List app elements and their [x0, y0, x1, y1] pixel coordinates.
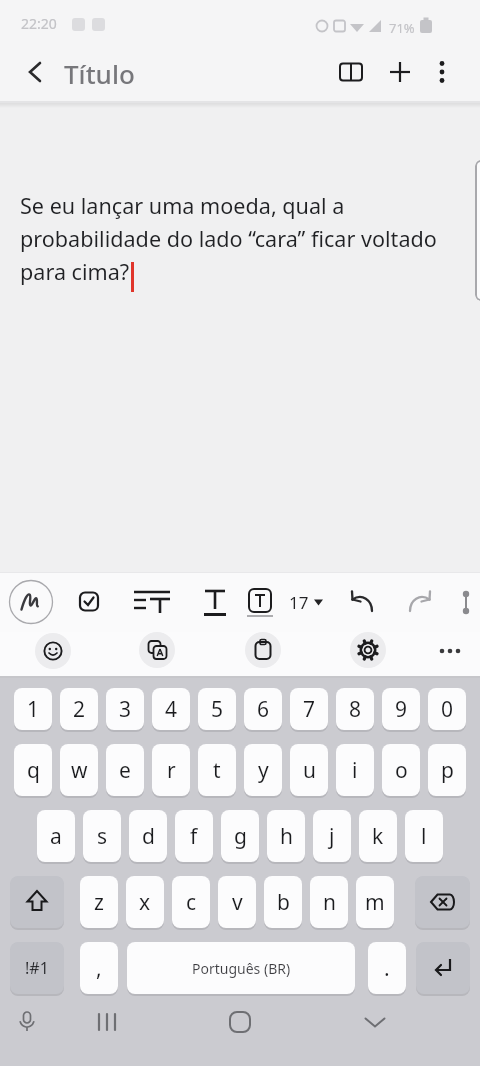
staticText: b — [277, 888, 290, 917]
staticText: c — [186, 888, 197, 917]
button[interactable]: 3 — [106, 688, 144, 730]
button[interactable] — [238, 580, 282, 624]
button[interactable] — [35, 633, 71, 669]
button[interactable] — [87, 1002, 127, 1042]
button[interactable]: t — [198, 744, 236, 796]
staticText: a — [50, 822, 62, 851]
button[interactable]: p — [428, 744, 466, 796]
button[interactable]: a — [37, 810, 75, 862]
button[interactable]: w — [60, 744, 98, 796]
button[interactable] — [139, 632, 175, 668]
button[interactable]: k — [359, 810, 397, 862]
button[interactable] — [416, 942, 470, 994]
staticText: 7 — [303, 695, 316, 724]
staticText: n — [323, 888, 336, 917]
staticText: 2 — [73, 695, 86, 724]
button[interactable]: v — [218, 876, 256, 928]
button[interactable] — [355, 1002, 395, 1042]
button[interactable]: u — [290, 744, 328, 796]
button[interactable]: e — [106, 744, 144, 796]
button[interactable] — [340, 580, 384, 624]
staticText: 6 — [257, 695, 270, 724]
staticText: j — [329, 822, 335, 851]
button[interactable] — [10, 876, 64, 928]
button[interactable]: i — [336, 744, 374, 796]
button[interactable] — [9, 580, 53, 624]
button[interactable]: , — [80, 942, 118, 994]
staticText: 17 — [289, 591, 309, 614]
staticText: 0 — [441, 695, 454, 724]
button[interactable]: h — [267, 810, 305, 862]
button[interactable]: 17 — [284, 580, 332, 624]
button[interactable]: b — [264, 876, 302, 928]
button[interactable]: 0 — [428, 688, 466, 730]
button[interactable]: 2 — [60, 688, 98, 730]
staticText: t — [213, 756, 221, 785]
staticText: p — [441, 756, 454, 785]
staticText: f — [190, 822, 198, 851]
staticText: 4 — [165, 695, 178, 724]
button[interactable]: x — [126, 876, 164, 928]
button[interactable]: !#1 — [10, 942, 64, 994]
button[interactable]: o — [382, 744, 420, 796]
button[interactable] — [428, 633, 472, 669]
button[interactable]: Título — [64, 56, 135, 91]
button[interactable] — [350, 632, 386, 668]
button[interactable] — [220, 1002, 260, 1042]
staticText: , — [96, 954, 102, 983]
button[interactable] — [193, 580, 237, 624]
button[interactable]: z — [80, 876, 118, 928]
button[interactable]: 5 — [198, 688, 236, 730]
button[interactable] — [7, 1002, 47, 1042]
button[interactable]: 7 — [290, 688, 328, 730]
staticText: 22:20 — [21, 14, 57, 33]
button[interactable]: q — [14, 744, 52, 796]
staticText: . — [384, 954, 390, 983]
staticText: x — [139, 888, 151, 917]
staticText: 3 — [119, 695, 132, 724]
button[interactable] — [67, 580, 111, 624]
button[interactable] — [415, 876, 470, 928]
button[interactable]: j — [313, 810, 351, 862]
button[interactable] — [398, 580, 442, 624]
button[interactable]: y — [244, 744, 282, 796]
staticText: g — [234, 822, 247, 851]
button[interactable] — [245, 632, 281, 668]
button[interactable]: s — [83, 810, 121, 862]
button[interactable]: c — [172, 876, 210, 928]
staticText: l — [421, 822, 427, 851]
staticText: Português (BR) — [192, 959, 291, 978]
button[interactable]: 8 — [336, 688, 374, 730]
button[interactable]: d — [129, 810, 167, 862]
staticText: 1 — [27, 695, 40, 724]
button[interactable]: n — [310, 876, 348, 928]
button[interactable]: 9 — [382, 688, 420, 730]
staticText: 9 — [395, 695, 408, 724]
staticText: 8 — [349, 695, 362, 724]
button[interactable]: 4 — [152, 688, 190, 730]
staticText: u — [303, 756, 316, 785]
staticText: 71% — [389, 19, 415, 37]
staticText: d — [142, 822, 155, 851]
staticText: o — [395, 756, 408, 785]
button[interactable] — [131, 580, 175, 624]
button[interactable] — [14, 50, 58, 94]
button[interactable] — [378, 50, 422, 94]
button[interactable]: r — [152, 744, 190, 796]
button[interactable]: . — [368, 942, 406, 994]
button[interactable] — [329, 50, 373, 94]
staticText: e — [119, 756, 131, 785]
button[interactable]: f — [175, 810, 213, 862]
button[interactable]: l — [405, 810, 443, 862]
button[interactable]: g — [221, 810, 259, 862]
staticText: i — [352, 756, 358, 785]
staticText: z — [94, 888, 104, 917]
staticText: q — [27, 756, 40, 785]
button[interactable]: Português (BR) — [127, 942, 355, 994]
button[interactable]: 1 — [14, 688, 52, 730]
button[interactable] — [420, 50, 464, 94]
button[interactable]: 6 — [244, 688, 282, 730]
staticText: v — [232, 888, 243, 917]
button[interactable]: m — [356, 876, 394, 928]
staticText: 5 — [211, 695, 224, 724]
